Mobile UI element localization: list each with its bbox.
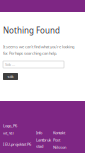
staticText: Sök … <box>5 62 15 67</box>
button[interactable]: Nilsson <box>53 145 66 150</box>
staticText: stad <box>36 144 43 149</box>
staticText: Kontakt <box>53 130 65 135</box>
staticText: I EU-projektet P6 <box>3 142 31 147</box>
button[interactable]: stad <box>36 144 43 149</box>
staticText: Lantbruk <box>36 137 51 143</box>
staticText: sök <box>7 74 13 79</box>
staticText: It seems we can't find what you're looki… <box>3 44 74 56</box>
staticText: vit_VIT <box>3 130 14 136</box>
staticText: Logo_P6 <box>3 123 17 128</box>
staticText: Post <box>53 137 60 143</box>
button[interactable]: Info <box>36 130 42 135</box>
staticText: Nothing Found <box>3 25 60 36</box>
button[interactable]: Kontakt <box>53 130 65 135</box>
button[interactable]: sök <box>3 73 18 80</box>
button[interactable]: Post <box>53 137 60 143</box>
staticText: Nilsson <box>53 145 66 150</box>
staticText: Info <box>36 130 42 135</box>
button[interactable]: Lantbruk <box>36 137 51 143</box>
button[interactable]: Sök <box>3 61 64 68</box>
